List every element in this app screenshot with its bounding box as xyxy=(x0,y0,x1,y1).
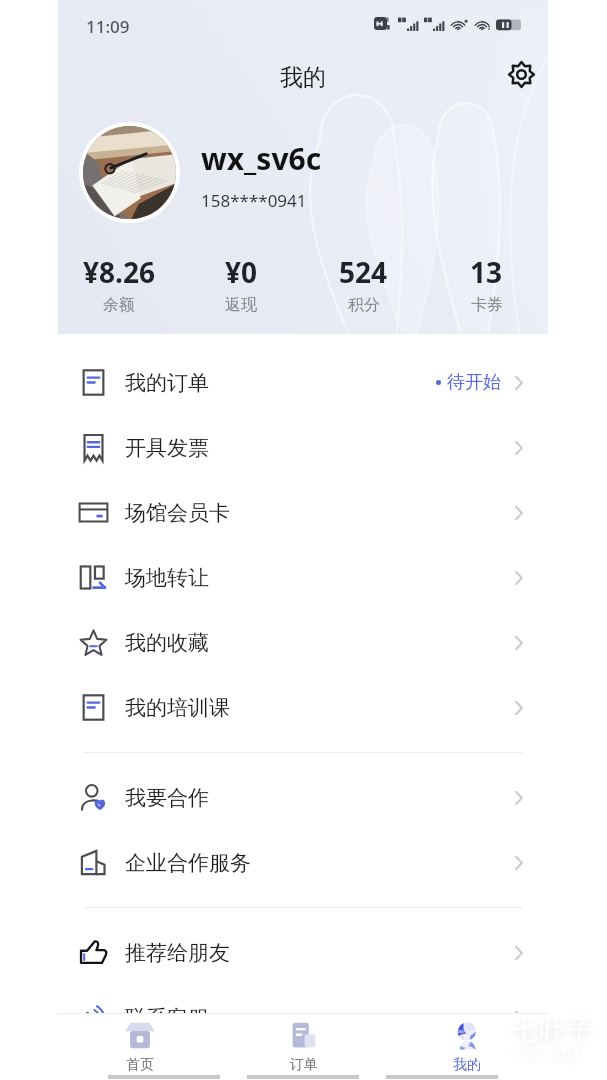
staticText: 订单 xyxy=(290,1056,318,1071)
button[interactable]: 我的培训课 xyxy=(58,675,548,740)
staticText: 余额 xyxy=(103,295,135,315)
button[interactable]: 场馆会员卡 xyxy=(58,480,548,545)
button[interactable]: 联系客服 xyxy=(58,985,548,1050)
staticText: 13 xyxy=(470,253,503,291)
button[interactable]: 13 xyxy=(425,253,548,315)
button[interactable]: ¥8.26 xyxy=(58,253,180,315)
staticText: 积分 xyxy=(348,295,380,315)
button[interactable]: 订单 xyxy=(222,1013,385,1071)
button[interactable]: 我的 xyxy=(385,1013,548,1071)
button[interactable]: 我的订单 xyxy=(58,350,548,415)
button[interactable]: 我要合作 xyxy=(58,765,548,830)
staticText: 11:09 xyxy=(86,15,130,38)
staticText: 我的订单 xyxy=(125,370,209,396)
button[interactable]: 我的收藏 xyxy=(58,610,548,675)
staticText: wx_sv6c xyxy=(201,138,322,179)
button[interactable]: Settings xyxy=(501,54,541,94)
staticText: 我的收藏 xyxy=(125,630,209,656)
button[interactable]: 524 xyxy=(302,253,425,315)
button[interactable]: 首页 xyxy=(58,1013,222,1071)
staticText: 场馆会员卡 xyxy=(125,500,230,526)
staticText: 我的 xyxy=(58,63,548,92)
staticText: 158****0941 xyxy=(201,189,307,212)
staticText: 场地转让 xyxy=(125,565,209,591)
staticText: 推荐给朋友 xyxy=(125,940,230,966)
staticText: 返现 xyxy=(225,295,257,315)
staticText: ¥8.26 xyxy=(83,253,155,291)
staticText: 开具发票 xyxy=(125,435,209,461)
staticText: 企业合作服务 xyxy=(125,850,251,876)
staticText: 我要合作 xyxy=(125,785,209,811)
button[interactable]: ¥0 xyxy=(180,253,302,315)
button[interactable]: 开具发票 xyxy=(58,415,548,480)
button[interactable]: 推荐给朋友 xyxy=(58,920,548,985)
staticText: 卡券 xyxy=(471,295,503,315)
staticText: 我的培训课 xyxy=(125,695,230,721)
staticText: 524 xyxy=(339,253,388,291)
staticText: 首页 xyxy=(126,1056,154,1071)
button[interactable]: 场地转让 xyxy=(58,545,548,610)
button[interactable]: 企业合作服务 xyxy=(58,830,548,895)
staticText: 我的 xyxy=(453,1056,481,1071)
staticText: ¥0 xyxy=(225,253,258,291)
staticText: 联系客服 xyxy=(125,1005,209,1031)
staticText: 待开始 xyxy=(447,371,501,394)
